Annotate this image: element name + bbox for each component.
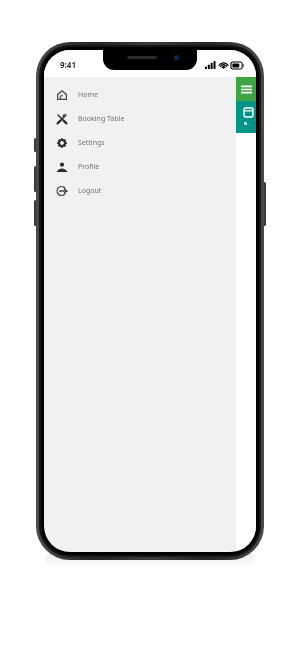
button[interactable]: Booking card xyxy=(236,101,256,133)
staticText: N xyxy=(244,121,248,126)
button[interactable]: Booking Table xyxy=(44,107,256,131)
button[interactable]: Profile xyxy=(44,155,256,179)
staticText: Logout xyxy=(78,186,102,196)
button[interactable]: Settings xyxy=(44,131,256,155)
button[interactable]: Logout xyxy=(44,179,256,203)
staticText: Home xyxy=(78,90,98,100)
staticText: Profile xyxy=(78,162,100,172)
staticText: 9:41 xyxy=(60,59,76,70)
staticText: Booking Table xyxy=(78,114,125,124)
staticText: Settings xyxy=(78,138,105,148)
button[interactable]: Open menu xyxy=(236,77,256,101)
button[interactable]: Home xyxy=(44,83,256,107)
